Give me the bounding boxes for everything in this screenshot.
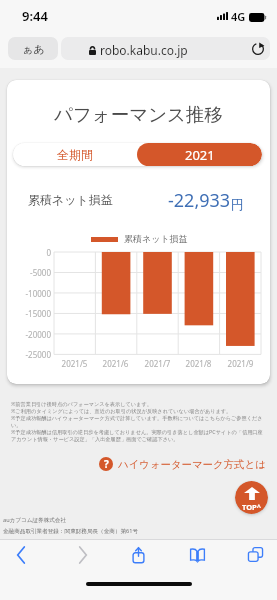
staticText: TOP^ <box>242 502 262 512</box>
staticText: -10000 <box>7 288 51 299</box>
staticText: 金融商品取引業者登録：関東財務局長（金商）第61号 <box>3 527 139 535</box>
button[interactable]: 全期間 <box>13 143 137 166</box>
staticText: robo.kabu.co.jp <box>100 42 188 58</box>
button[interactable]: Page settings <box>8 37 58 60</box>
button[interactable]: Back to top <box>235 481 268 514</box>
staticText: -5000 <box>7 267 51 278</box>
button[interactable]: ? <box>99 457 266 471</box>
staticText: 2021/6 <box>90 358 141 369</box>
button[interactable]: Share <box>124 541 152 569</box>
button[interactable]: Forward <box>67 541 95 569</box>
staticText: ? <box>104 457 109 471</box>
button[interactable]: Tabs <box>241 541 269 569</box>
staticText: 全期間 <box>57 147 93 162</box>
staticText: 2021/8 <box>173 358 224 369</box>
button[interactable]: 2021 <box>137 143 262 166</box>
button[interactable]: Back <box>8 541 36 569</box>
button[interactable]: Reload <box>250 41 265 56</box>
button[interactable]: Bookmarks <box>183 541 211 569</box>
staticText: ぁあ <box>22 42 45 56</box>
staticText: -20000 <box>7 329 51 340</box>
staticText: ※前営業日引け後時点のパフォーマンスを表示しています。 <box>11 400 152 407</box>
staticText: ※ご利用のタイミングによっては、直近のお取引の状況が反映されていない場合がありま… <box>11 407 232 414</box>
staticText: 累積ネット損益 <box>124 233 188 244</box>
staticText: 0 <box>7 247 51 258</box>
staticText: 2021/5 <box>49 358 100 369</box>
staticText: 2021/7 <box>132 358 183 369</box>
staticText: 4G <box>231 9 246 24</box>
staticText: 9:44 <box>22 7 48 25</box>
staticText: -22,933 <box>168 188 231 213</box>
staticText: ※予定成功報酬はハイウォーターマーク方式で計算しています。手数料についてはこちら… <box>11 414 263 428</box>
staticText: -25000 <box>7 349 51 360</box>
staticText: 累積ネット損益 <box>28 192 113 207</box>
staticText: ハイウォーターマーク方式とは <box>118 458 266 471</box>
staticText: パフォーマンス推移 <box>7 103 270 126</box>
staticText: -15000 <box>7 308 51 319</box>
staticText: 2021 <box>185 146 215 164</box>
staticText: ※予定成功報酬は信用取引の逆日歩を考慮しておりません。実際の引き落とし金額はPC… <box>11 428 263 442</box>
button[interactable] <box>61 37 270 60</box>
staticText: auカブコム証券株式会社 <box>3 516 67 524</box>
staticText: 円 <box>231 196 244 212</box>
staticText: 2021/9 <box>215 358 266 369</box>
